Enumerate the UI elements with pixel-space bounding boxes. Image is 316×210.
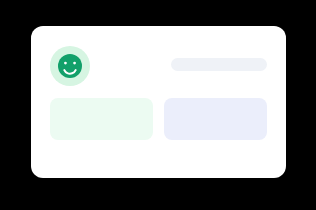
- button[interactable]: Profile avatar: [50, 46, 90, 86]
- button[interactable]: Profile avatar: [31, 26, 286, 178]
